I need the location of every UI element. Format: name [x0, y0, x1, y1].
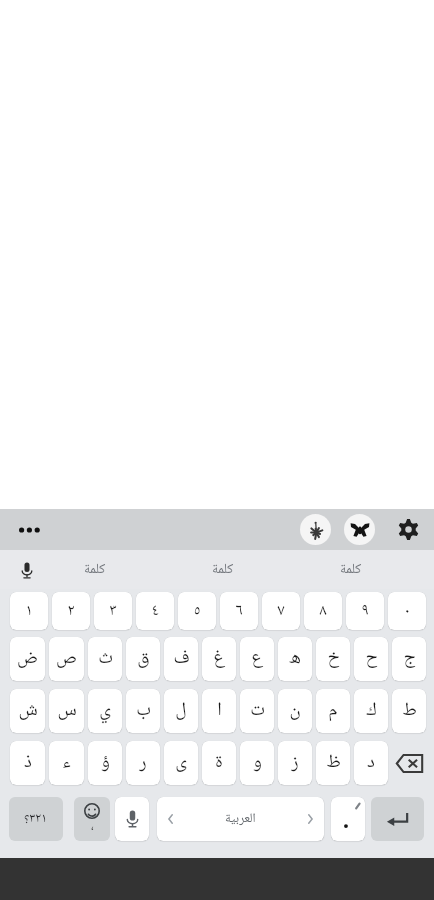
staticText: ق [137, 643, 150, 675]
staticText: ذ [24, 747, 32, 779]
staticText: ر [139, 747, 147, 779]
button[interactable]: ر [126, 741, 160, 785]
button[interactable]: ا [202, 689, 236, 733]
staticText: ٩ [361, 598, 369, 625]
staticText: س [57, 695, 77, 727]
button[interactable]: ق [126, 637, 160, 681]
staticText: ص [56, 643, 77, 675]
button[interactable]: س [49, 689, 84, 733]
button[interactable]: ك [354, 689, 388, 733]
button[interactable]: كلمة [30, 550, 159, 589]
staticText: ع [251, 643, 263, 675]
staticText: ف [173, 643, 190, 675]
button[interactable]: ب [126, 689, 160, 733]
button[interactable]: ش [10, 689, 45, 733]
button[interactable]: م [316, 689, 350, 733]
staticText: ك [366, 695, 377, 727]
staticText: ي [99, 695, 111, 727]
staticText: غ [213, 643, 225, 675]
staticText: ط [402, 695, 417, 727]
button[interactable]: ذ [10, 741, 45, 785]
button[interactable]: ف [164, 637, 198, 681]
staticText: ٢ [67, 598, 75, 625]
button[interactable]: ٩ [346, 592, 384, 630]
button[interactable]: ٢ [52, 592, 90, 630]
button[interactable]: خ [316, 637, 350, 681]
staticText: ت [250, 695, 265, 727]
button[interactable]: Stickers [344, 514, 375, 545]
button[interactable]: ٠ [388, 592, 426, 630]
staticText: ا [217, 695, 222, 727]
staticText: خ [327, 643, 340, 675]
button[interactable]: ٣ [94, 592, 132, 630]
staticText: العربية [225, 808, 256, 830]
staticText: ٦ [235, 598, 243, 625]
button[interactable]: ث [88, 637, 122, 681]
staticText: ‭؟٣٢١ [24, 808, 48, 830]
button[interactable]: كلمة [159, 550, 287, 589]
button[interactable]: More options [11, 509, 49, 550]
button[interactable]: Backspace [392, 741, 426, 785]
button[interactable]: ٥ [178, 592, 216, 630]
staticText: ش [18, 695, 38, 727]
staticText: و [253, 747, 262, 779]
staticText: د [367, 747, 375, 779]
staticText: كلمة [340, 558, 362, 582]
button[interactable]: ظ [316, 741, 350, 785]
button[interactable]: ى [164, 741, 198, 785]
staticText: ز [291, 747, 299, 779]
staticText: ظ [326, 747, 341, 779]
button[interactable]: ٤ [136, 592, 174, 630]
button[interactable]: ٦ [220, 592, 258, 630]
button[interactable]: ‭؟٣٢١ [9, 797, 63, 841]
staticText: ب [136, 695, 151, 727]
button[interactable]: Enter [371, 797, 424, 841]
staticText: ه [289, 643, 301, 675]
button[interactable]: ه [278, 637, 312, 681]
button[interactable]: ز [278, 741, 312, 785]
staticText: ٥ [193, 598, 201, 625]
button[interactable]: ط [392, 689, 426, 733]
button[interactable]: ١ [10, 592, 48, 630]
staticText: ج [403, 643, 416, 675]
button[interactable]: د [354, 741, 388, 785]
button[interactable]: ل [164, 689, 198, 733]
staticText: ة [215, 747, 223, 779]
staticText: ح [365, 643, 378, 675]
staticText: كلمة [84, 558, 106, 582]
staticText: ء [62, 747, 71, 779]
button[interactable]: ن [278, 689, 312, 733]
staticText: ٣ [109, 598, 117, 625]
staticText: ١ [25, 598, 33, 625]
staticText: ٤ [151, 598, 159, 625]
button[interactable]: Themes [300, 514, 331, 545]
button[interactable]: ٨ [304, 592, 342, 630]
button[interactable]: ح [354, 637, 388, 681]
button[interactable]: Voice input [12, 555, 42, 585]
button[interactable]: Voice input [115, 797, 149, 841]
staticText: ض [17, 643, 38, 675]
button[interactable]: غ [202, 637, 236, 681]
button[interactable]: العربية [157, 797, 324, 841]
staticText: ى [175, 747, 187, 779]
staticText: ل [175, 695, 187, 727]
button[interactable]: ي [88, 689, 122, 733]
button[interactable]: ة [202, 741, 236, 785]
button[interactable]: ع [240, 637, 274, 681]
button[interactable]: ء [49, 741, 84, 785]
button[interactable] [331, 797, 365, 841]
button[interactable]: كلمة [287, 550, 415, 589]
button[interactable]: Emoji [74, 797, 110, 841]
button[interactable]: ض [10, 637, 45, 681]
button[interactable]: ج [392, 637, 426, 681]
staticText: ث [98, 643, 113, 675]
button[interactable]: ٧ [262, 592, 300, 630]
button[interactable]: و [240, 741, 274, 785]
button[interactable]: Settings [397, 514, 419, 545]
staticText: ٧ [277, 598, 285, 625]
staticText: ن [289, 695, 301, 727]
button[interactable]: ص [49, 637, 84, 681]
button[interactable]: ؤ [88, 741, 122, 785]
staticText: ٨ [319, 598, 327, 625]
button[interactable]: ت [240, 689, 274, 733]
